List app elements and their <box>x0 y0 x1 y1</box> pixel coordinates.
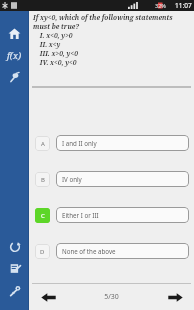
staticText: 5/30 <box>104 292 119 302</box>
button[interactable]: None of the above <box>56 243 189 259</box>
button[interactable]: Previous question <box>37 286 59 308</box>
button[interactable]: Either I or III <box>56 207 189 223</box>
button[interactable]: Notes <box>0 258 29 280</box>
staticText: f(x) <box>7 49 22 61</box>
staticText: C <box>41 212 45 220</box>
button[interactable]: D <box>35 244 50 259</box>
button[interactable]: Bookmark <box>0 66 29 88</box>
button[interactable]: Home <box>0 22 29 44</box>
staticText: IV only <box>62 175 82 183</box>
staticText: B <box>41 176 45 184</box>
button[interactable]: Next question <box>164 286 186 308</box>
button[interactable]: A <box>35 136 50 151</box>
button[interactable]: C <box>35 208 50 223</box>
staticText: 11:07 <box>175 1 192 10</box>
staticText: Either I or III <box>62 211 99 219</box>
button[interactable]: Unlock <box>0 280 29 302</box>
button[interactable]: Formulas <box>0 44 29 66</box>
staticText: 32% <box>155 2 166 9</box>
button[interactable]: B <box>35 172 50 187</box>
staticText: I and II only <box>62 139 97 147</box>
staticText: D <box>40 248 45 256</box>
staticText: A <box>41 140 45 148</box>
staticText: None of the above <box>62 247 116 255</box>
button[interactable]: I and II only <box>56 135 189 151</box>
staticText: If xy<0, which of the following statemen… <box>33 13 190 67</box>
button[interactable]: IV only <box>56 171 189 187</box>
button[interactable]: Reset <box>0 236 29 258</box>
